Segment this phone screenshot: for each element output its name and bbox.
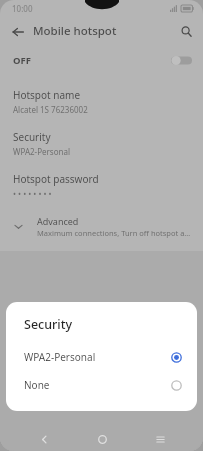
staticText: Maximum connections, Turn off hotspot au… [37,228,193,238]
staticText: Advanced [37,215,79,227]
button[interactable]: None [6,371,197,399]
staticText: Mobile hotspot [33,23,117,39]
button[interactable]: Advanced [0,207,203,244]
staticText: 10:00 [12,3,33,14]
staticText: Hotspot name [13,88,81,102]
button[interactable]: Recent apps [148,427,172,451]
button[interactable]: OFF [0,45,203,75]
staticText: OFF [13,54,31,67]
staticText: WPA2-Personal [24,350,96,364]
staticText: Hotspot password [13,172,99,186]
button[interactable]: Security [0,123,203,165]
button[interactable]: Home [90,427,114,451]
button[interactable]: Back [7,21,28,42]
button[interactable]: Back [32,427,56,451]
button[interactable]: Search [176,21,197,42]
button[interactable]: Hotspot name [0,81,203,123]
staticText: • • • • • • • • [13,188,52,199]
button[interactable]: WPA2-Personal [6,343,197,371]
button[interactable]: Hotspot password [0,165,203,207]
staticText: WPA2-Personal [13,146,70,157]
staticText: Alcatel 1S 76236002 [13,104,88,115]
staticText: None [24,378,50,392]
staticText: Security [24,316,73,333]
staticText: Security [13,130,51,144]
